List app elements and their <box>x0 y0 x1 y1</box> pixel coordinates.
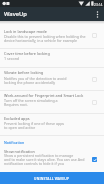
staticText: Lock in landscape mode <box>4 29 47 34</box>
button[interactable] <box>0 67 104 90</box>
button[interactable]: Show notification, checked <box>92 157 97 162</box>
button[interactable]: Toggle setting <box>92 77 97 82</box>
button[interactable]: Notification <box>0 135 104 146</box>
button[interactable]: Toggle setting <box>92 100 97 105</box>
button[interactable] <box>0 113 104 135</box>
staticText: locking the phone accidentally <box>4 80 56 85</box>
staticText: Cover time before locking <box>4 51 50 56</box>
staticText: Work-around for Fingerprint and Smart Lo… <box>4 93 84 98</box>
staticText: Notifies you of the detection to avoid <box>4 76 67 81</box>
staticText: Disable this to prevent locking when hol… <box>4 34 86 39</box>
button[interactable] <box>0 146 104 172</box>
staticText: Vibrate before locking <box>4 70 44 75</box>
button[interactable] <box>0 90 104 113</box>
staticText: to open and active <box>4 125 36 130</box>
staticText: Turn off the screen simulating a <box>4 98 58 103</box>
staticText: device horizontally, in a vehicle for ex… <box>4 38 78 43</box>
button[interactable]: UNINSTALL WAVEUP <box>0 172 104 184</box>
staticText: UNINSTALL WAVEUP <box>34 176 70 180</box>
staticText: notification controls to hide it if you <box>4 161 64 166</box>
staticText: Excluded apps <box>4 116 30 121</box>
staticText: 1 second <box>4 56 20 61</box>
staticText: Notification <box>4 140 25 145</box>
staticText: Show a persistent notification to manage <box>4 153 74 158</box>
button[interactable] <box>0 48 104 67</box>
button[interactable]: More options <box>90 7 104 21</box>
staticText: Show notification <box>4 149 35 154</box>
staticText: Prevent locking if one of these apps <box>4 121 65 126</box>
staticText: Requires root. <box>4 102 28 107</box>
button[interactable] <box>0 21 104 48</box>
staticText: WaveUp <box>4 10 27 18</box>
staticText: 23:14 <box>94 2 103 6</box>
staticText: and to make sure it stays alive. You can… <box>4 157 85 162</box>
button[interactable]: Toggle setting <box>92 33 97 38</box>
